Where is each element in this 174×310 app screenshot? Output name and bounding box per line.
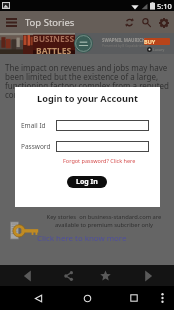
staticText: Email Id (21, 121, 46, 130)
staticText: BUSINESS (33, 33, 75, 45)
staticText: Presented by B Gopalakrishnan (102, 44, 149, 48)
button[interactable]: Home (75, 286, 99, 310)
staticText: Luxury (153, 47, 165, 52)
button[interactable]: More options (150, 286, 174, 310)
staticText: Key stories on business-standard.com are… (17, 213, 174, 228)
button[interactable]: Add to favourites (87, 265, 123, 286)
staticText: Log In (76, 177, 98, 187)
staticText: The impact on revenues and jobs may have… (5, 62, 170, 101)
button[interactable]: Previous article (9, 265, 45, 286)
staticText: 5:10 (157, 1, 172, 11)
button[interactable]: Share (50, 265, 86, 286)
staticText: Top Stories (25, 16, 75, 29)
button[interactable]: Search (138, 14, 155, 31)
button[interactable]: Password field (56, 141, 149, 152)
button[interactable]: Back (26, 286, 50, 310)
button[interactable]: Email Id field (56, 120, 149, 131)
button[interactable]: Advertisement banner (0, 33, 174, 54)
button[interactable]: Settings (155, 14, 172, 31)
button[interactable]: Next article (130, 265, 166, 286)
staticText: Password (21, 142, 51, 151)
button[interactable]: Open navigation drawer (0, 11, 22, 33)
button[interactable]: Buy now (144, 38, 170, 45)
button[interactable]: Log In (67, 176, 107, 188)
button[interactable]: Forgot password? Click here (63, 157, 136, 164)
button[interactable]: Recent apps (122, 286, 146, 310)
button[interactable]: Click here to know more (37, 233, 127, 244)
staticText: BUY NOW (144, 38, 170, 45)
staticText: SWAPNIL MAURICHA (102, 37, 149, 43)
button[interactable]: Refresh (121, 14, 138, 31)
staticText: BATTLES (36, 45, 72, 54)
staticText: Login to your Account (37, 92, 138, 105)
